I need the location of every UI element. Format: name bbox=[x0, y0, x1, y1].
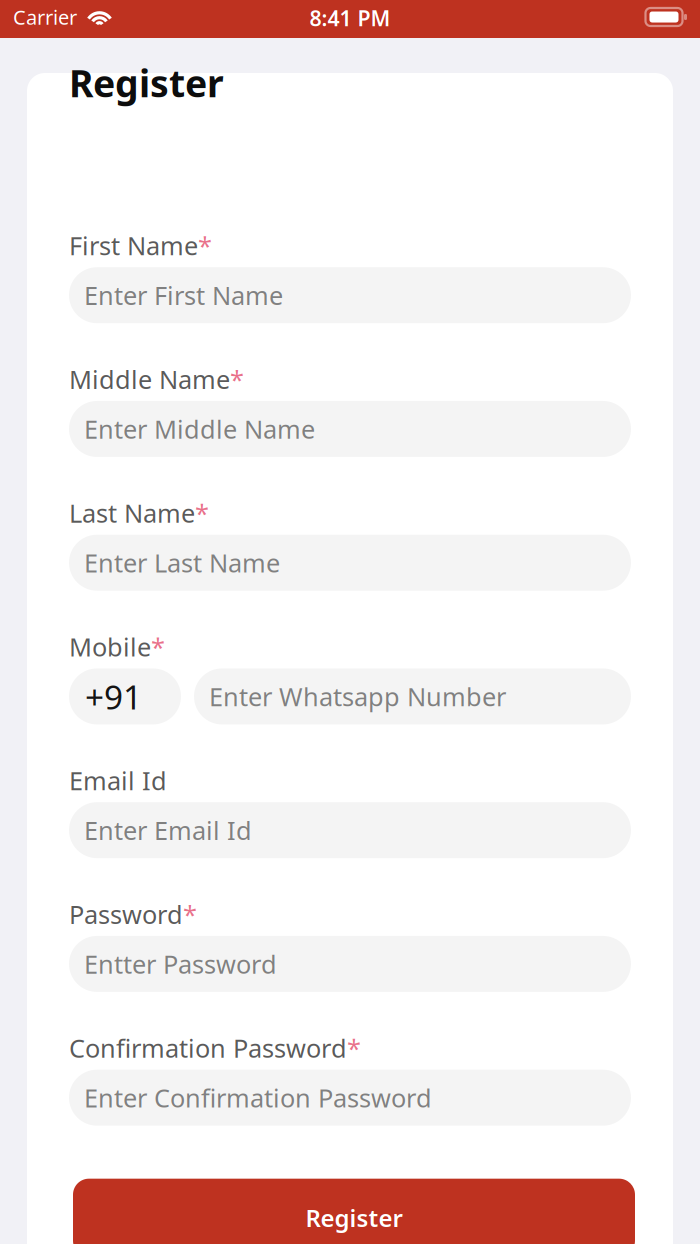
button[interactable]: Entter Password bbox=[69, 936, 631, 992]
button[interactable]: Enter Middle Name bbox=[69, 401, 631, 457]
button[interactable]: Enter Whatsapp Number bbox=[194, 668, 631, 724]
staticText: * bbox=[195, 496, 209, 530]
staticText: Enter Whatsapp Number bbox=[209, 680, 506, 713]
staticText: * bbox=[151, 630, 165, 663]
button[interactable]: +91 bbox=[69, 668, 181, 724]
staticText: * bbox=[183, 897, 197, 931]
button[interactable]: Enter Email Id bbox=[69, 802, 631, 858]
staticText: Register bbox=[69, 58, 224, 108]
staticText: * bbox=[230, 362, 244, 396]
staticText: Carrier bbox=[13, 4, 77, 30]
staticText: Email Id bbox=[69, 763, 167, 797]
staticText: Enter Confirmation Password bbox=[84, 1081, 432, 1114]
staticText: Enter Email Id bbox=[84, 813, 252, 847]
staticText: Last Name bbox=[69, 496, 195, 530]
staticText: Register bbox=[305, 1202, 402, 1234]
button[interactable]: Enter Confirmation Password bbox=[69, 1070, 631, 1126]
staticText: Confirmation Password bbox=[69, 1031, 347, 1065]
staticText: First Name bbox=[69, 229, 198, 262]
button[interactable]: Enter First Name bbox=[69, 267, 631, 323]
button[interactable]: Register bbox=[73, 1179, 635, 1244]
staticText: +91 bbox=[85, 674, 142, 719]
staticText: Enter Middle Name bbox=[84, 412, 315, 446]
staticText: Entter Password bbox=[84, 947, 277, 981]
staticText: Password bbox=[69, 897, 183, 931]
staticText: 8:41 PM bbox=[309, 4, 390, 32]
staticText: Enter First Name bbox=[84, 278, 283, 312]
staticText: Enter Last Name bbox=[84, 546, 280, 579]
button[interactable]: Enter Last Name bbox=[69, 535, 631, 591]
staticText: Middle Name bbox=[69, 362, 230, 396]
staticText: * bbox=[198, 229, 212, 262]
staticText: Mobile bbox=[69, 630, 151, 663]
staticText: * bbox=[347, 1031, 361, 1065]
